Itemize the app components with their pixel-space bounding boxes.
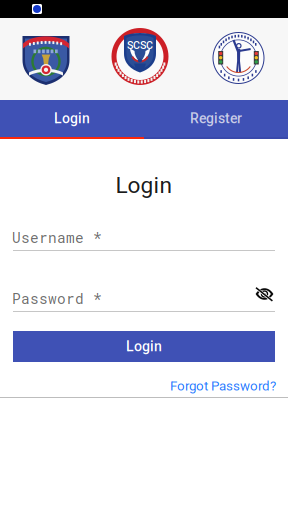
button[interactable]: Forgot Password? <box>168 378 278 394</box>
staticText: Forgot Password? <box>170 378 276 394</box>
staticText: Register <box>190 110 242 127</box>
staticText: Password * <box>12 289 102 308</box>
button[interactable]: Login <box>0 100 144 137</box>
staticText: Login <box>115 172 172 199</box>
button[interactable]: Register <box>144 100 288 137</box>
staticText: Username * <box>12 228 102 247</box>
staticText: Login <box>126 338 162 355</box>
staticText: Login <box>54 110 90 127</box>
staticText: SCSC <box>127 39 153 51</box>
button[interactable]: Login <box>13 331 275 362</box>
button[interactable]: Show password <box>0 289 19 305</box>
